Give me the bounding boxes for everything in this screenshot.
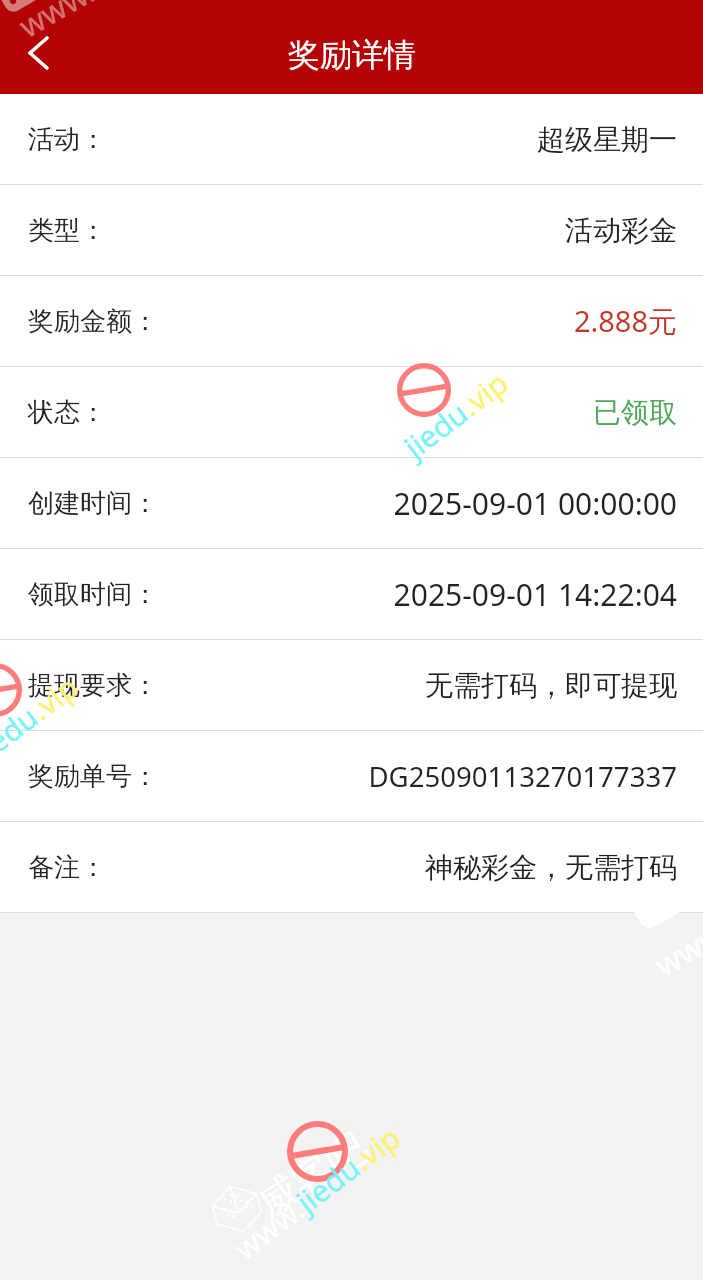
staticText: 已领取 bbox=[593, 395, 677, 430]
staticText: 状态： bbox=[28, 396, 106, 429]
staticText: 类型： bbox=[28, 214, 106, 247]
button[interactable]: 提现要求： bbox=[0, 640, 703, 730]
staticText: .vip bbox=[344, 1116, 408, 1179]
staticText: www. bbox=[647, 909, 703, 985]
staticText: 超级星期一 bbox=[537, 122, 677, 157]
staticText: 领取时间： bbox=[28, 578, 158, 611]
staticText: jiedu bbox=[288, 1147, 368, 1221]
staticText: 2025-09-01 00:00:00 bbox=[393, 483, 677, 524]
button[interactable]: 状态： bbox=[0, 367, 703, 457]
button[interactable]: 奖励单号： bbox=[0, 731, 703, 821]
staticText: 提现要求： bbox=[28, 669, 158, 702]
staticText: www. bbox=[11, 0, 102, 46]
staticText: www. bbox=[226, 1189, 313, 1268]
staticText: 无需打码，即可提现 bbox=[425, 668, 677, 703]
staticText: 威客吧 bbox=[248, 1122, 376, 1228]
staticText: 神秘彩金，无需打码 bbox=[425, 850, 677, 885]
staticText: 活动彩金 bbox=[565, 213, 677, 248]
staticText: 2.888元 bbox=[573, 301, 677, 341]
staticText: jiedu bbox=[396, 392, 476, 467]
button[interactable]: 活动： bbox=[0, 94, 703, 184]
staticText: .vip bbox=[22, 666, 86, 729]
staticText: .vip bbox=[452, 362, 516, 425]
staticText: 备注： bbox=[28, 851, 106, 884]
button[interactable]: 类型： bbox=[0, 185, 703, 275]
button[interactable]: 领取时间： bbox=[0, 549, 703, 639]
staticText: 2025-09-01 14:22:04 bbox=[393, 574, 677, 615]
button[interactable]: Back bbox=[13, 29, 61, 77]
staticText: 奖励金额： bbox=[28, 305, 158, 338]
button[interactable]: 奖励金额： bbox=[0, 276, 703, 366]
staticText: DG25090113270177337 bbox=[368, 757, 677, 795]
staticText: 创建时间： bbox=[28, 487, 158, 520]
button[interactable]: 创建时间： bbox=[0, 458, 703, 548]
staticText: 奖励详情 bbox=[288, 35, 416, 75]
staticText: jiedu bbox=[0, 696, 46, 771]
staticText: 奖励单号： bbox=[28, 760, 158, 793]
button[interactable]: 备注： bbox=[0, 822, 703, 912]
staticText: 活动： bbox=[28, 123, 106, 156]
